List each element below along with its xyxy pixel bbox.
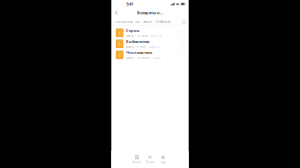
staticText: Автор · 12 книг · 2019 г. bbox=[126, 34, 162, 38]
button[interactable]: Сортировка bbox=[114, 20, 133, 23]
button[interactable]: Поиск bbox=[143, 155, 156, 164]
button[interactable]: Что почитать bbox=[111, 49, 189, 60]
staticText: Что почитать bbox=[126, 50, 152, 55]
button[interactable]: Жанры bbox=[142, 20, 153, 23]
staticText: Жанры bbox=[143, 20, 152, 23]
staticText: Автор · 24 книги · 2020 bbox=[126, 56, 161, 60]
button[interactable]: Back bbox=[111, 9, 121, 16]
button[interactable]: Серия bbox=[111, 27, 189, 38]
button[interactable]: Книги bbox=[130, 155, 143, 164]
staticText: Сортировка bbox=[115, 20, 132, 23]
staticText: Библиотека bbox=[126, 39, 149, 44]
button[interactable]: Ещё bbox=[156, 155, 169, 164]
staticText: Автор · 8 книг · 2021 г. bbox=[126, 45, 160, 49]
button[interactable]: Все bbox=[134, 20, 141, 23]
button[interactable]: Платформы bbox=[154, 20, 173, 23]
staticText: Серия bbox=[126, 28, 139, 33]
staticText: · bbox=[153, 20, 154, 23]
staticText: Поиск bbox=[146, 160, 154, 164]
staticText: Платформы bbox=[155, 20, 171, 23]
staticText: Ещё bbox=[161, 160, 165, 164]
staticText: Книги bbox=[132, 160, 141, 164]
staticText: Возвраты и… bbox=[137, 10, 163, 15]
staticText: · bbox=[133, 20, 134, 23]
staticText: · bbox=[141, 20, 142, 23]
staticText: Все bbox=[135, 20, 139, 23]
button[interactable]: Layout bbox=[182, 20, 185, 23]
button[interactable]: Библиотека bbox=[111, 38, 189, 49]
staticText: 9:41 bbox=[126, 1, 133, 7]
